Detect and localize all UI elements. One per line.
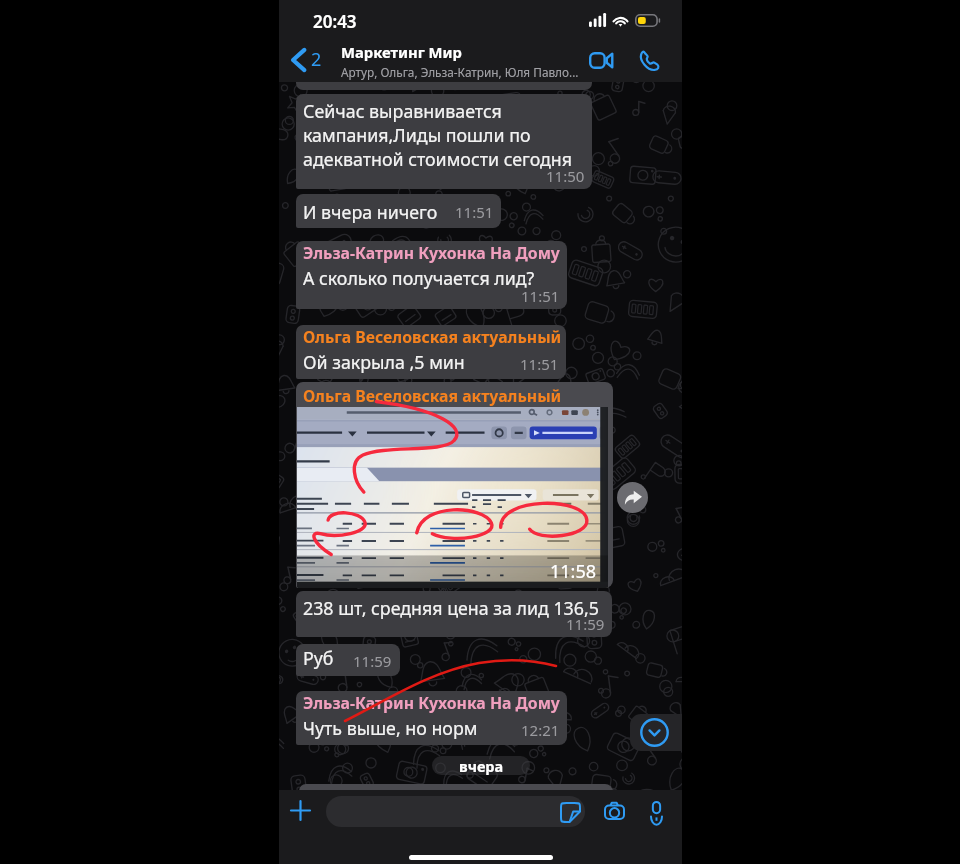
staticText: Чуть выше, но норм [303, 716, 478, 740]
staticText: 11:51 [521, 286, 560, 306]
button[interactable]: Voice message [636, 791, 676, 831]
staticText: Ольга Веселовская актуальный [303, 385, 562, 407]
staticText: вчера [459, 756, 504, 775]
button[interactable]: Forward [617, 482, 648, 513]
staticText: Эльза-Катрин Кухонка На Дому [303, 692, 560, 714]
button[interactable]: Attach [281, 791, 319, 829]
staticText: 11:59 [353, 651, 392, 671]
staticText: кампания,Лиды пошли по [303, 123, 531, 147]
button[interactable]: Back, 2 unread [285, 38, 329, 82]
button[interactable]: И вчера ничего [296, 194, 501, 228]
staticText: Ольга Веселовская актуальный [303, 326, 562, 348]
button[interactable]: 238 шт, средняя цена за лид 136,5 [296, 591, 612, 637]
staticText: 238 шт, средняя цена за лид 136,5 [303, 596, 599, 620]
staticText: 12:21 [521, 720, 560, 740]
button[interactable]: Scroll to latest [630, 714, 682, 751]
button[interactable]: Эльза-Катрин Кухонка На Дому [296, 241, 567, 309]
button[interactable]: Ольга Веселовская актуальный [296, 382, 613, 588]
staticText: Артур, Ольга, Эльза-Катрин, Юля Павло... [341, 64, 579, 80]
button[interactable]: Эльза-Катрин Кухонка На Дому [296, 691, 567, 745]
staticText: 11:51 [520, 354, 559, 374]
staticText: Ой закрыла ,5 мин [303, 350, 465, 374]
button[interactable]: Ольга Веселовская актуальный [296, 325, 566, 379]
staticText: Сейчас выравнивается [303, 99, 502, 123]
staticText: 11:51 [455, 202, 494, 222]
staticText: Руб [303, 646, 334, 670]
staticText: адекватной стоимости сегодня [303, 147, 573, 171]
staticText: Эльза-Катрин Кухонка На Дому [303, 242, 560, 264]
button[interactable]: Message [326, 796, 585, 827]
staticText: 11:59 [566, 614, 605, 634]
button[interactable]: Stickers [558, 800, 582, 824]
staticText: 2 [311, 47, 322, 72]
staticText: Маркетинг Мир [341, 42, 462, 62]
button[interactable]: Руб [296, 644, 400, 676]
staticText: А сколько получается лид? [303, 266, 535, 290]
staticText: И вчера ничего [303, 200, 438, 224]
button[interactable]: Video call [579, 38, 623, 82]
button[interactable]: Camera [594, 791, 634, 831]
staticText: 11:50 [546, 166, 585, 186]
staticText: 20:43 [313, 10, 357, 33]
button[interactable]: вчера [432, 756, 530, 775]
button[interactable]: Сейчас выравнивается [296, 94, 592, 189]
button[interactable]: Call [627, 38, 671, 82]
staticText: 11:58 [550, 559, 597, 584]
